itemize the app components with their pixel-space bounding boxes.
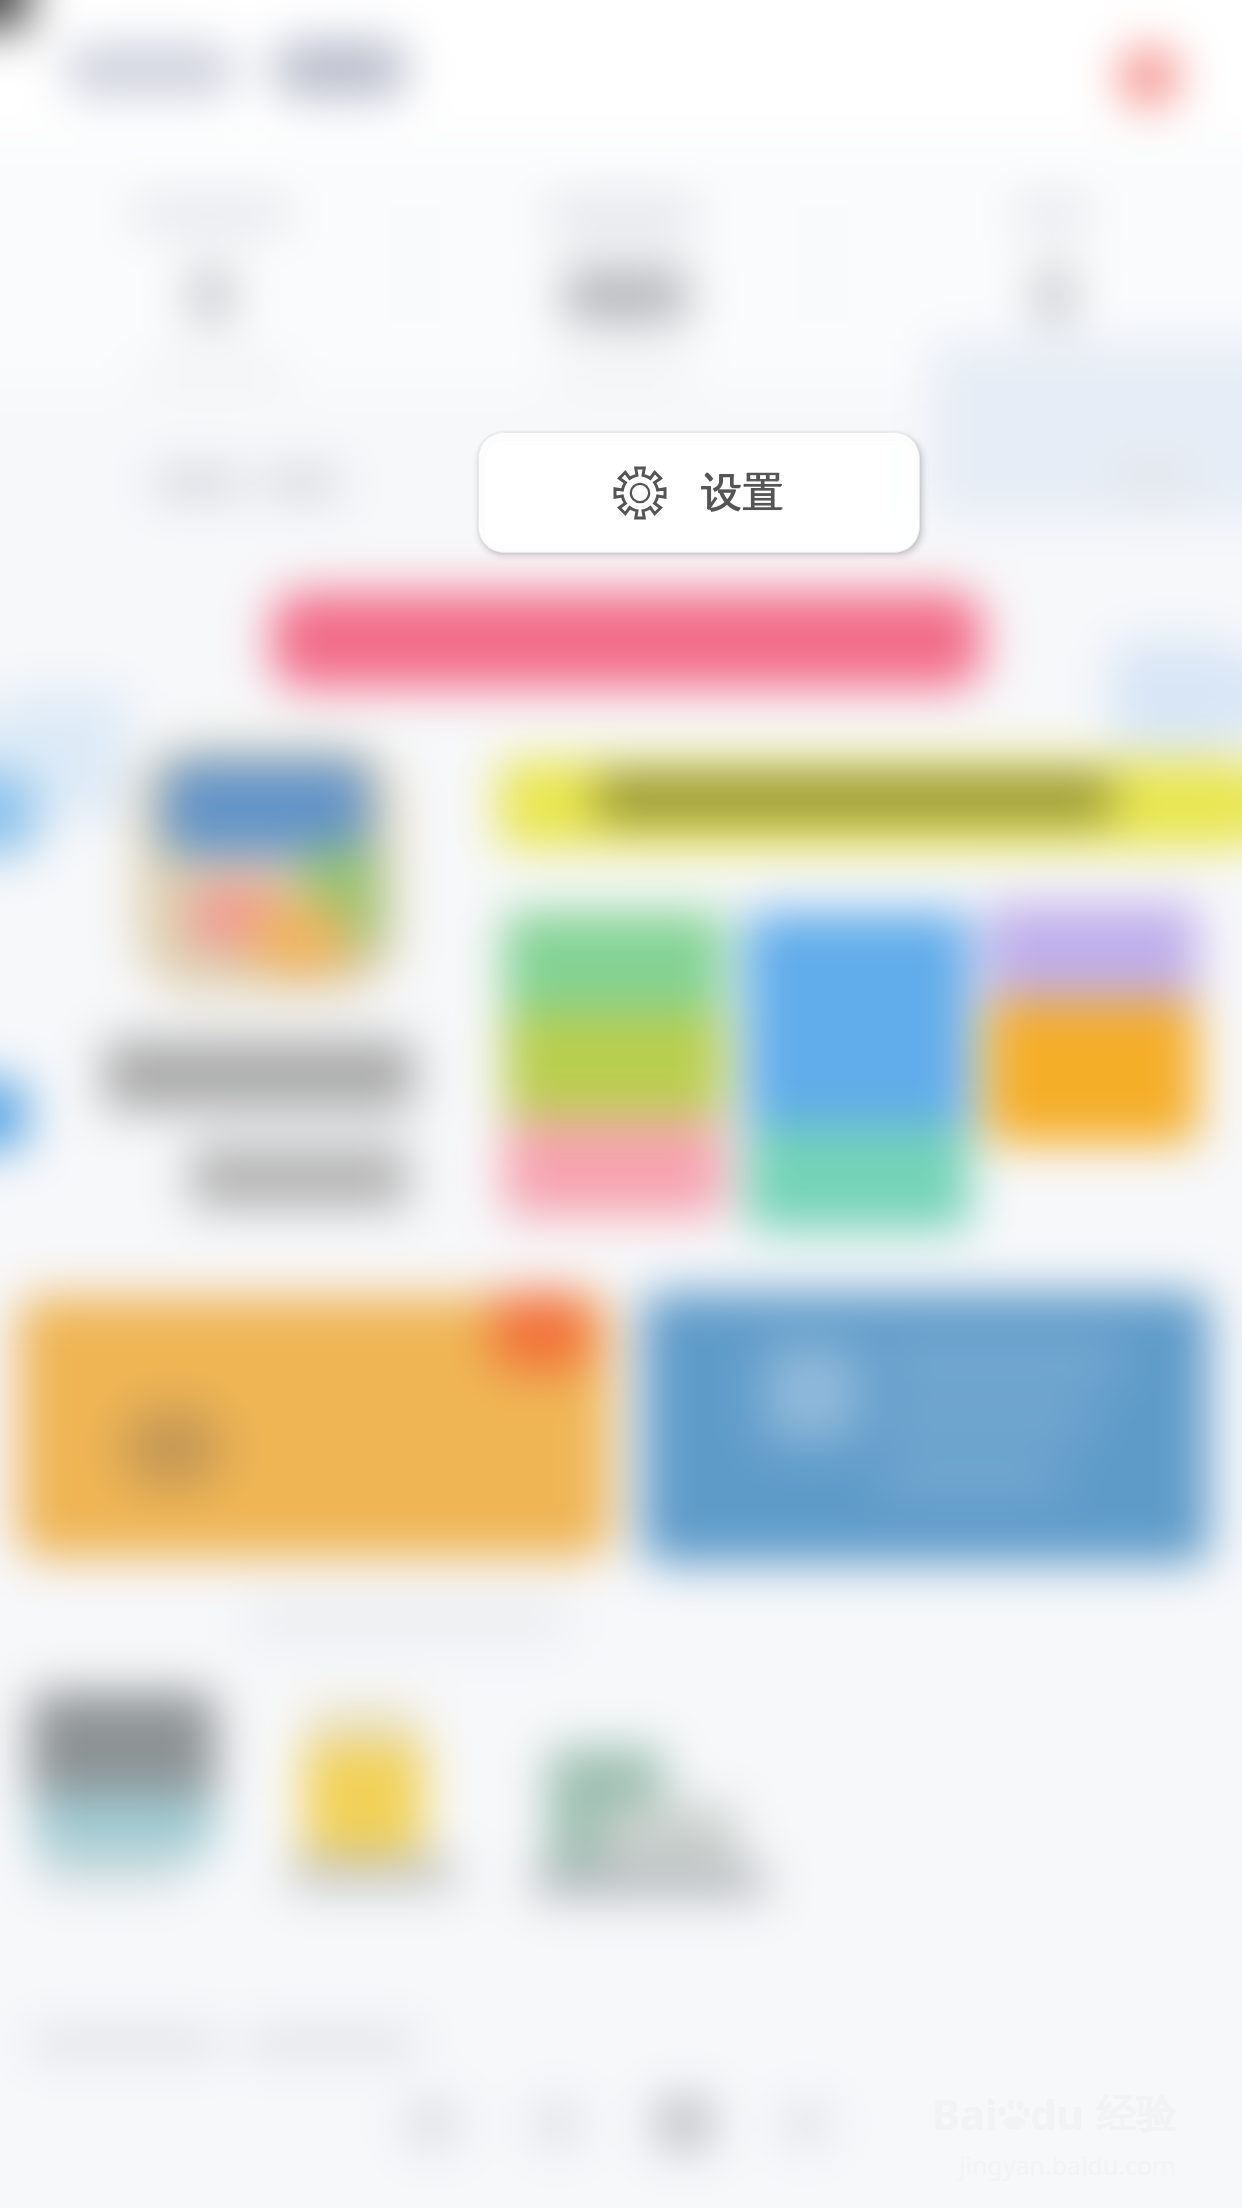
staticText: 设置	[701, 467, 783, 519]
staticText: 设置	[702, 467, 784, 519]
other: Settings	[613, 466, 667, 520]
button[interactable]: Settings	[478, 432, 920, 553]
staticText: 设置	[701, 468, 783, 520]
